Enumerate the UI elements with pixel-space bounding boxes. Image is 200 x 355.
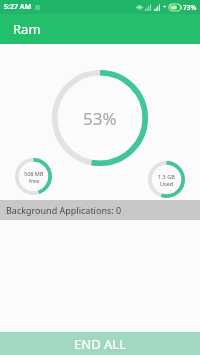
staticText: 73% bbox=[183, 3, 197, 12]
staticText: Ram bbox=[13, 20, 41, 38]
staticText: 53% bbox=[83, 107, 117, 130]
staticText: free bbox=[29, 177, 40, 184]
staticText: END ALL bbox=[74, 335, 126, 353]
staticText: Background Applications: 0 bbox=[6, 204, 122, 216]
staticText: 508 MB bbox=[24, 170, 44, 177]
button[interactable]: END ALL bbox=[0, 332, 200, 355]
staticText: Used bbox=[160, 180, 174, 187]
staticText: 1.3 GB bbox=[158, 173, 175, 180]
staticText: + bbox=[163, 3, 167, 11]
staticText: 5:27 AM bbox=[4, 2, 32, 12]
